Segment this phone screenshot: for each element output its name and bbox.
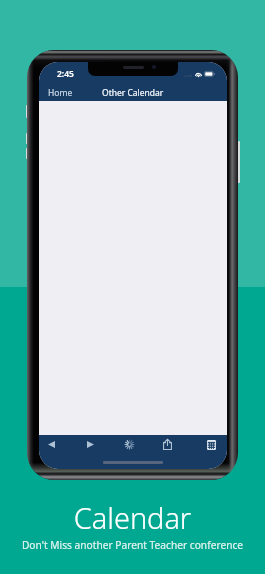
button[interactable]: Share [156,435,178,454]
button[interactable]: Back [40,435,62,454]
staticText: Other Calendar [102,87,164,99]
button[interactable]: Forward [79,435,101,454]
staticText: 2:45 [57,68,74,80]
staticText: Don't Miss another Parent Teacher confer… [0,538,265,552]
staticText: Home [48,87,73,99]
button[interactable]: Home [45,84,76,102]
button[interactable]: Tabs [200,435,222,454]
staticText: Calendar [0,498,265,537]
button[interactable]: Loading [118,435,140,454]
